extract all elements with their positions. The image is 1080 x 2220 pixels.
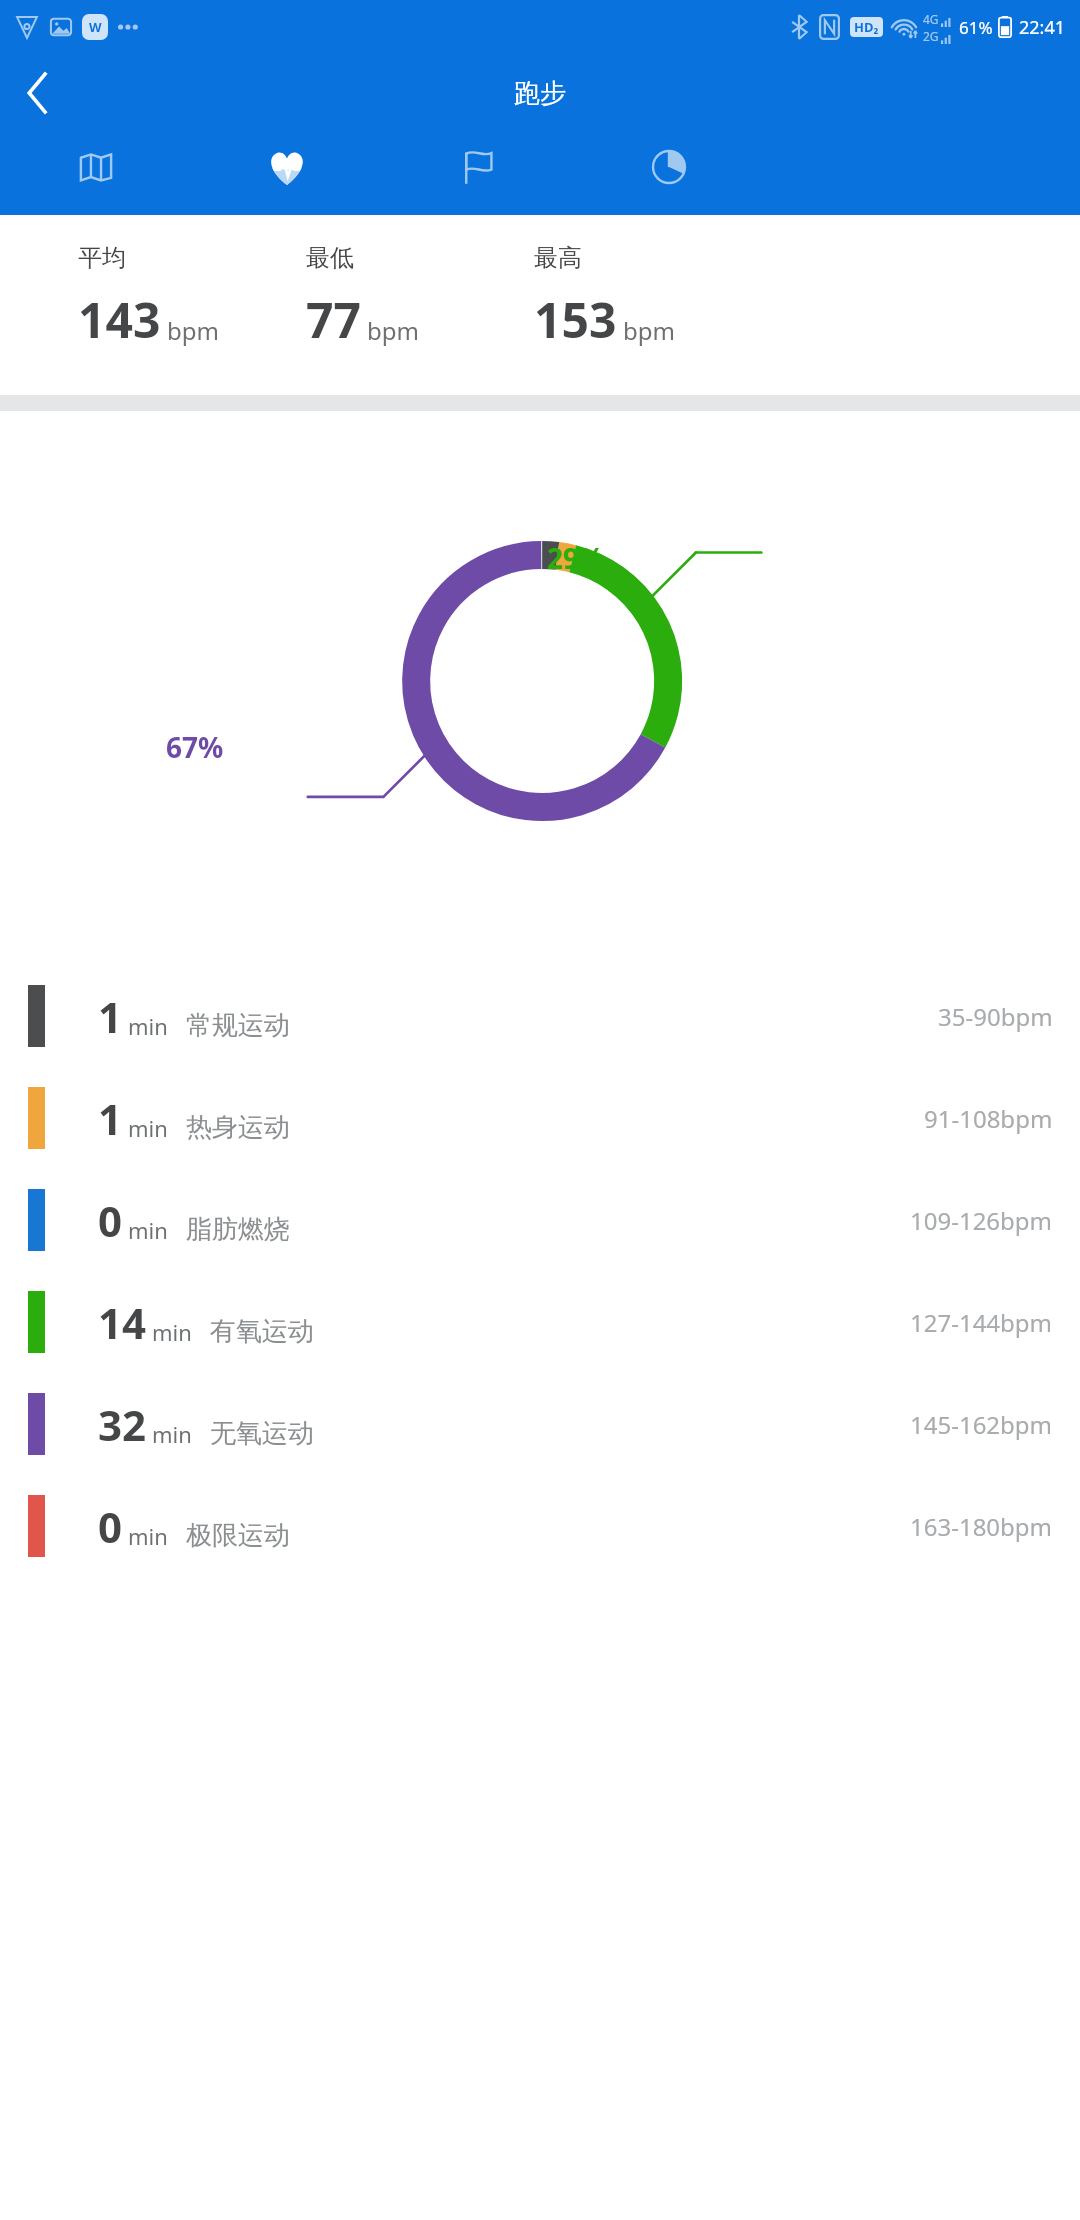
staticText: 热身运动	[186, 1111, 290, 1144]
staticText: 145-162bpm	[910, 1408, 1053, 1441]
staticText: W	[89, 18, 102, 36]
button[interactable]: 14	[0, 1271, 1080, 1373]
staticText: 35-90bpm	[938, 1000, 1053, 1033]
staticText: bpm	[623, 314, 675, 347]
button[interactable]: 1	[0, 965, 1080, 1067]
staticText: 脂肪燃烧	[186, 1213, 290, 1246]
staticText: HD₂	[854, 18, 879, 36]
staticText: 4G	[923, 11, 939, 27]
button[interactable]: 0	[0, 1169, 1080, 1271]
staticText: 32	[98, 1396, 147, 1453]
button[interactable]: Back	[8, 63, 68, 123]
staticText: bpm	[167, 314, 219, 347]
button[interactable]: Map route	[0, 132, 191, 202]
staticText: min	[128, 1521, 168, 1551]
staticText: 153	[534, 287, 617, 352]
staticText: 29%	[547, 539, 605, 577]
staticText: 1	[98, 1090, 123, 1147]
staticText: 127-144bpm	[910, 1306, 1053, 1339]
button[interactable]: 0	[0, 1475, 1080, 1577]
staticText: 1	[98, 988, 123, 1045]
staticText: 0	[98, 1498, 123, 1555]
staticText: 有氧运动	[210, 1315, 314, 1348]
staticText: 14	[98, 1294, 147, 1351]
button[interactable]: Laps	[382, 132, 573, 202]
staticText: min	[152, 1419, 192, 1449]
button[interactable]: Heart rate	[191, 132, 382, 202]
staticText: 77	[306, 287, 361, 352]
button[interactable]: 32	[0, 1373, 1080, 1475]
staticText: 常规运动	[186, 1009, 290, 1042]
staticText: 109-126bpm	[910, 1204, 1053, 1237]
staticText: min	[152, 1317, 192, 1347]
staticText: 平均	[78, 243, 126, 273]
staticText: 0	[98, 1192, 123, 1249]
button[interactable]: 1	[0, 1067, 1080, 1169]
staticText: 最低	[306, 243, 354, 273]
staticText: min	[128, 1011, 168, 1041]
staticText: min	[128, 1215, 168, 1245]
staticText: 跑步	[514, 77, 566, 110]
staticText: 61%	[959, 16, 993, 39]
staticText: 22:41	[1019, 15, 1066, 40]
staticText: 无氧运动	[210, 1417, 314, 1450]
staticText: 143	[78, 287, 161, 352]
staticText: 163-180bpm	[910, 1510, 1053, 1543]
button[interactable]: Statistics	[573, 132, 764, 202]
staticText: 最高	[534, 243, 582, 273]
staticText: 91-108bpm	[924, 1102, 1053, 1135]
staticText: 极限运动	[186, 1519, 290, 1552]
staticText: bpm	[367, 314, 419, 347]
staticText: 67%	[166, 728, 224, 766]
staticText: 2G	[923, 28, 939, 44]
staticText: min	[128, 1113, 168, 1143]
